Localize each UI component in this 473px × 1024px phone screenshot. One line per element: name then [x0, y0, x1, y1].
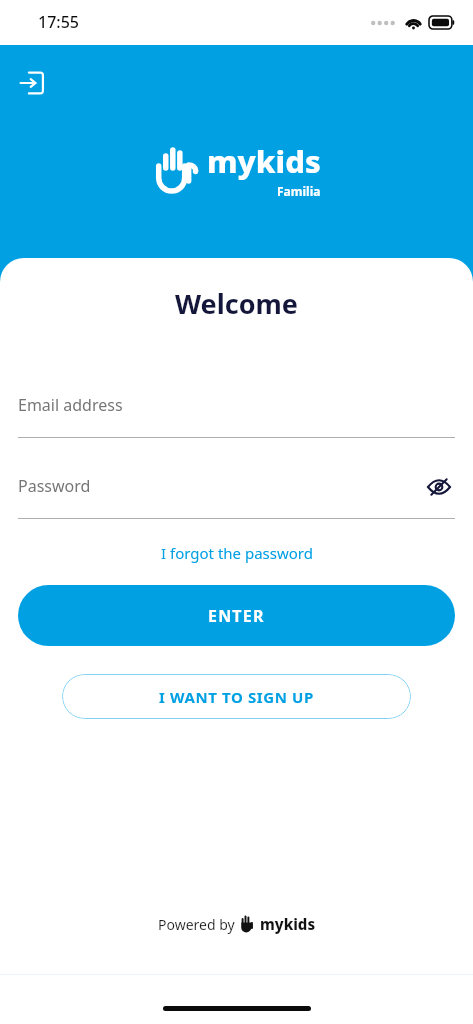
button[interactable]: Log in	[12, 63, 52, 103]
button[interactable]: I WANT TO SIGN UP	[62, 674, 411, 719]
button[interactable]: Email address	[18, 394, 455, 438]
button[interactable]: Password	[18, 475, 455, 519]
button[interactable]: Show password	[423, 471, 455, 503]
staticText: Familia	[277, 183, 321, 199]
staticText: I WANT TO SIGN UP	[159, 687, 314, 707]
button[interactable]: I forgot the password	[0, 543, 473, 563]
staticText: I forgot the password	[161, 543, 313, 563]
staticText: ENTER	[208, 605, 265, 627]
staticText: 17:55	[38, 11, 79, 33]
button[interactable]: ENTER	[18, 585, 455, 646]
staticText: Powered by	[158, 915, 239, 934]
staticText: mykids	[207, 140, 321, 182]
staticText: Email address	[18, 394, 123, 416]
staticText: Password	[18, 475, 91, 497]
staticText: mykids	[260, 914, 316, 934]
staticText: Welcome	[0, 285, 473, 322]
